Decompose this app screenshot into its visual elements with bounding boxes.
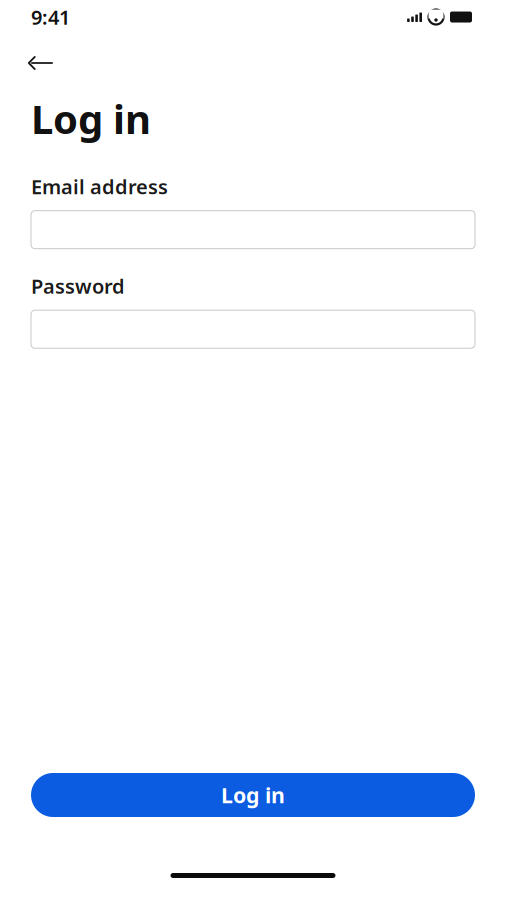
staticText: Email address	[31, 173, 168, 200]
staticText: Password	[31, 273, 125, 299]
button[interactable]: Back	[27, 48, 57, 78]
button[interactable]: Email address	[31, 211, 475, 249]
button[interactable]: Log in	[31, 773, 475, 817]
staticText: Log in	[221, 781, 285, 809]
button[interactable]: Password	[31, 310, 475, 348]
staticText: 9:41	[31, 4, 70, 30]
staticText: Log in	[31, 92, 151, 145]
